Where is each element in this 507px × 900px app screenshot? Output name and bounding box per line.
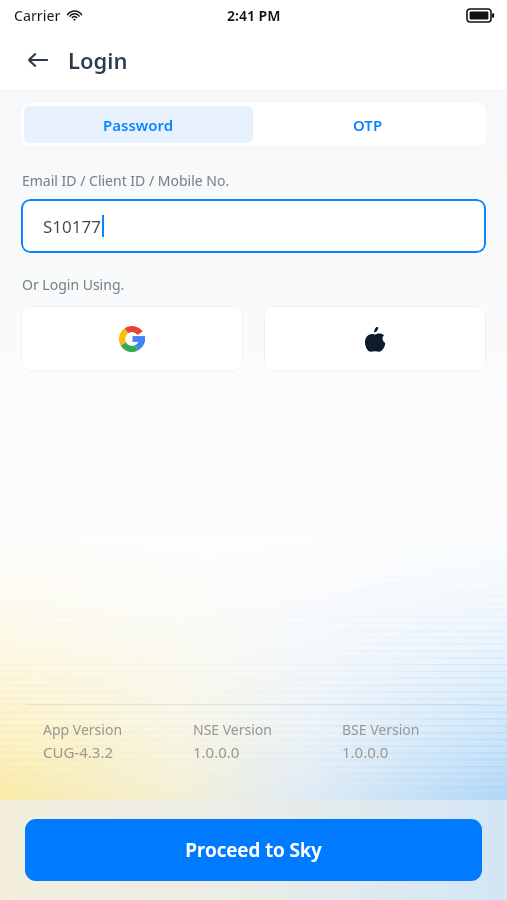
- button[interactable]: S10177: [21, 199, 486, 253]
- staticText: 2:41 PM: [227, 6, 281, 25]
- staticText: Email ID / Client ID / Mobile No.: [22, 171, 230, 190]
- staticText: Or Login Using.: [22, 275, 125, 294]
- staticText: CUG-4.3.2: [43, 742, 113, 762]
- staticText: Proceed to Sky: [185, 837, 322, 863]
- staticText: NSE Version: [193, 720, 272, 739]
- staticText: 1.0.0.0: [342, 742, 389, 762]
- staticText: BSE Version: [342, 720, 420, 739]
- staticText: App Version: [43, 720, 123, 739]
- staticText: Login: [68, 45, 128, 75]
- button[interactable]: Password: [24, 106, 253, 143]
- button[interactable]: Proceed to Sky: [25, 819, 482, 881]
- button[interactable]: Back: [16, 38, 60, 82]
- staticText: S10177: [43, 215, 101, 238]
- staticText: OTP: [353, 115, 383, 135]
- staticText: Password: [103, 115, 174, 135]
- button[interactable]: Sign in with Apple: [264, 306, 486, 371]
- staticText: Carrier: [14, 6, 61, 25]
- button[interactable]: OTP: [253, 106, 483, 143]
- button[interactable]: Sign in with Google: [21, 306, 243, 371]
- staticText: 1.0.0.0: [193, 742, 240, 762]
